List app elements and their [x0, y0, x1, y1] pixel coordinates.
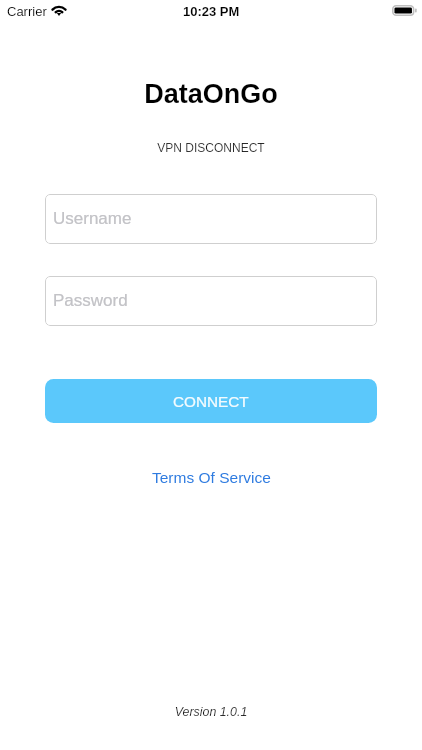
button[interactable]: CONNECT	[45, 379, 377, 423]
other: Battery full	[392, 5, 417, 16]
staticText: 10:23 PM	[183, 4, 240, 19]
button[interactable]: Username	[45, 194, 377, 244]
other: Wi-Fi	[51, 5, 67, 16]
button[interactable]: Terms Of Service	[148, 467, 275, 488]
staticText: Version 1.0.1	[0, 705, 422, 719]
button[interactable]: Password	[45, 276, 377, 326]
staticText: DataOnGo	[0, 79, 422, 109]
staticText: Carrier	[7, 4, 47, 19]
staticText: CONNECT	[173, 393, 249, 410]
staticText: VPN DISCONNECT	[0, 141, 422, 154]
staticText: Password	[53, 291, 128, 310]
staticText: Username	[53, 209, 132, 228]
